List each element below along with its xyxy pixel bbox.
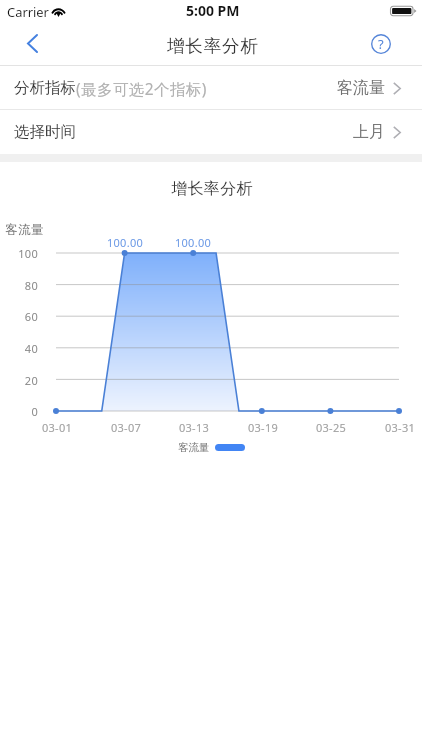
staticText: 80	[0, 278, 38, 293]
staticText: 03-19	[233, 420, 293, 435]
staticText: 03-13	[164, 420, 224, 435]
staticText: 选择时间	[14, 122, 76, 142]
staticText: 03-01	[27, 420, 87, 435]
staticText: 100.00	[95, 235, 155, 250]
staticText: 03-31	[370, 420, 422, 435]
staticText: 20	[0, 373, 38, 388]
staticText: 0	[0, 404, 38, 419]
staticText: 60	[0, 309, 38, 324]
staticText: 客流量	[5, 222, 44, 238]
staticText: 客流量	[178, 441, 210, 454]
staticText: 100	[0, 246, 38, 261]
staticText: 03-07	[96, 420, 156, 435]
staticText: 增长率分析	[1, 179, 422, 199]
staticText: 上月	[353, 122, 385, 142]
staticText: 100.00	[163, 235, 223, 250]
staticText: 分析指标	[14, 78, 76, 98]
staticText: (最多可选2个指标)	[76, 78, 207, 99]
staticText: 40	[0, 341, 38, 356]
staticText: Carrier	[7, 3, 49, 21]
button[interactable]: Help	[359, 23, 403, 64]
button[interactable]: 选择时间	[0, 110, 422, 154]
staticText: 5:00 PM	[186, 1, 240, 20]
button[interactable]: 分析指标	[0, 66, 422, 110]
staticText: 客流量	[337, 78, 385, 98]
staticText: 增长率分析	[167, 35, 259, 57]
button[interactable]: Back	[10, 23, 54, 64]
staticText: ?	[378, 35, 384, 53]
staticText: 03-25	[301, 420, 361, 435]
